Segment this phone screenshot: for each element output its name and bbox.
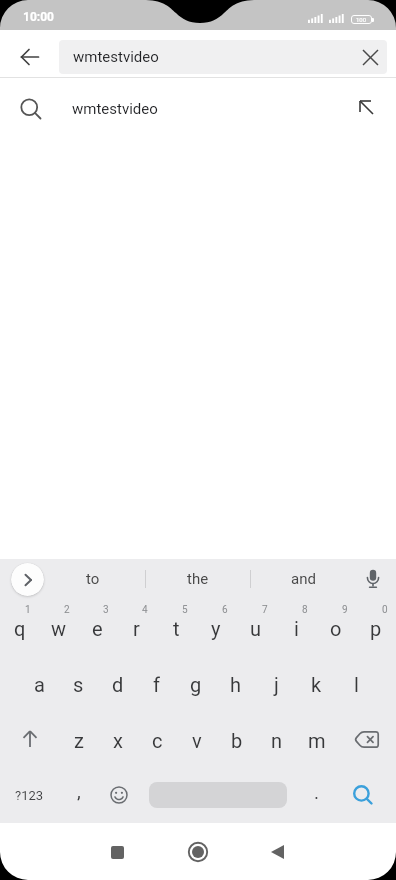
button[interactable]: j bbox=[256, 655, 296, 711]
button[interactable] bbox=[357, 44, 383, 70]
button[interactable]: g bbox=[176, 655, 216, 711]
button[interactable]: ?123 bbox=[0, 767, 59, 823]
button[interactable] bbox=[11, 563, 44, 596]
staticText: a bbox=[34, 673, 45, 696]
staticText: 2 bbox=[64, 604, 70, 616]
staticText: e bbox=[92, 617, 103, 640]
staticText: n bbox=[271, 729, 283, 752]
staticText: c bbox=[152, 729, 163, 752]
staticText: ?123 bbox=[15, 788, 44, 803]
button[interactable] bbox=[257, 832, 297, 872]
button[interactable]: to bbox=[40, 559, 145, 599]
staticText: 8 bbox=[302, 604, 308, 616]
staticText: f bbox=[153, 673, 160, 696]
button[interactable]: z bbox=[59, 711, 98, 767]
staticText: to bbox=[86, 570, 100, 588]
staticText: 10:00 bbox=[23, 10, 54, 24]
button[interactable]: f bbox=[137, 655, 176, 711]
staticText: the bbox=[187, 570, 209, 588]
staticText: j bbox=[274, 673, 279, 696]
button[interactable]: e bbox=[78, 599, 117, 655]
staticText: . bbox=[314, 781, 320, 803]
staticText: 6 bbox=[222, 604, 228, 616]
button[interactable]: t bbox=[156, 599, 196, 655]
staticText: 4 bbox=[142, 604, 148, 616]
staticText: 100 bbox=[356, 16, 367, 23]
button[interactable]: h bbox=[216, 655, 256, 711]
button[interactable]: and bbox=[251, 559, 355, 599]
button[interactable]: s bbox=[59, 655, 98, 711]
staticText: b bbox=[231, 729, 243, 752]
button[interactable] bbox=[0, 711, 59, 767]
button[interactable] bbox=[139, 767, 297, 823]
staticText: 3 bbox=[103, 604, 109, 616]
button[interactable] bbox=[358, 564, 388, 594]
staticText: wmtestvideo bbox=[72, 100, 158, 118]
button[interactable]: w bbox=[39, 599, 78, 655]
staticText: u bbox=[250, 617, 262, 640]
staticText: i bbox=[294, 617, 299, 640]
staticText: w bbox=[51, 617, 67, 640]
button[interactable]: c bbox=[137, 711, 177, 767]
button[interactable]: , bbox=[59, 767, 99, 823]
staticText: t bbox=[173, 617, 180, 640]
button[interactable]: r bbox=[117, 599, 156, 655]
staticText: 9 bbox=[342, 604, 348, 616]
staticText: r bbox=[133, 617, 140, 640]
button[interactable]: d bbox=[98, 655, 137, 711]
staticText: l bbox=[354, 673, 359, 696]
button[interactable]: o bbox=[316, 599, 356, 655]
staticText: s bbox=[73, 673, 84, 696]
button[interactable]: x bbox=[98, 711, 137, 767]
staticText: o bbox=[330, 617, 342, 640]
button[interactable]: y bbox=[196, 599, 236, 655]
button[interactable] bbox=[178, 832, 218, 872]
staticText: 1 bbox=[25, 604, 31, 616]
button[interactable]: u bbox=[236, 599, 276, 655]
button[interactable]: wmtestvideo bbox=[0, 78, 396, 136]
button[interactable]: p bbox=[356, 599, 396, 655]
staticText: 0 bbox=[382, 604, 388, 616]
button[interactable]: . bbox=[297, 767, 337, 823]
staticText: g bbox=[190, 673, 202, 696]
staticText: wmtestvideo bbox=[73, 48, 159, 66]
button[interactable]: k bbox=[296, 655, 336, 711]
button[interactable]: a bbox=[20, 655, 59, 711]
button[interactable]: q bbox=[0, 599, 39, 655]
button[interactable]: the bbox=[146, 559, 250, 599]
staticText: p bbox=[370, 617, 382, 640]
staticText: 5 bbox=[182, 604, 188, 616]
button[interactable] bbox=[97, 832, 137, 872]
button[interactable] bbox=[99, 767, 139, 823]
staticText: m bbox=[308, 729, 326, 752]
staticText: h bbox=[230, 673, 242, 696]
button[interactable]: n bbox=[257, 711, 297, 767]
staticText: k bbox=[311, 673, 322, 696]
button[interactable]: m bbox=[297, 711, 337, 767]
button[interactable]: b bbox=[217, 711, 257, 767]
button[interactable] bbox=[354, 95, 378, 119]
button[interactable] bbox=[337, 767, 396, 823]
staticText: 7 bbox=[262, 604, 268, 616]
staticText: x bbox=[113, 729, 123, 752]
staticText: y bbox=[211, 617, 221, 640]
button[interactable]: v bbox=[177, 711, 217, 767]
staticText: z bbox=[74, 729, 84, 752]
button[interactable]: wmtestvideo bbox=[59, 40, 387, 74]
staticText: , bbox=[77, 780, 81, 802]
button[interactable]: l bbox=[336, 655, 376, 711]
staticText: q bbox=[14, 617, 26, 640]
staticText: v bbox=[192, 729, 202, 752]
button[interactable]: i bbox=[276, 599, 316, 655]
staticText: d bbox=[112, 673, 124, 696]
button[interactable] bbox=[14, 41, 46, 73]
button[interactable] bbox=[337, 711, 396, 767]
staticText: and bbox=[291, 570, 316, 588]
